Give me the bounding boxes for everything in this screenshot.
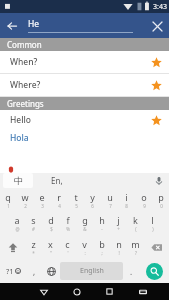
button[interactable]: g: [76, 211, 93, 235]
staticText: 2: [24, 203, 27, 209]
staticText: 5: [75, 203, 78, 209]
staticText: x: [48, 238, 53, 250]
button[interactable]: Shift: [0, 235, 25, 259]
staticText: 1: [7, 203, 10, 209]
staticText: 3: [41, 203, 44, 209]
button[interactable]: Hola: [0, 130, 169, 145]
staticText: Where?: [10, 79, 146, 91]
staticText: +: [117, 226, 120, 232]
staticText: 9: [143, 203, 146, 209]
button[interactable]: Hello: [0, 110, 169, 130]
button[interactable]: Recent apps: [93, 283, 126, 300]
staticText: ;: [101, 250, 103, 256]
staticText: En,: [51, 175, 63, 186]
staticText: !: [118, 250, 120, 256]
staticText: t: [74, 191, 78, 203]
staticText: Common: [7, 39, 42, 50]
staticText: -: [101, 226, 103, 232]
staticText: ): [152, 226, 154, 232]
button[interactable]: c: [59, 235, 76, 259]
button[interactable]: Voice typing: [151, 173, 167, 188]
staticText: q: [5, 191, 11, 203]
button[interactable]: t: [67, 188, 84, 211]
button[interactable]: y: [84, 188, 101, 211]
staticText: d: [48, 214, 54, 226]
button[interactable]: He: [28, 18, 133, 33]
button[interactable]: p: [152, 188, 169, 211]
staticText: z: [31, 238, 36, 250]
staticText: e: [39, 191, 45, 203]
staticText: &: [83, 226, 87, 232]
button[interactable]: Navigate up: [0, 14, 24, 38]
button[interactable]: Clear query: [145, 14, 169, 38]
staticText: Greetings: [7, 98, 44, 109]
button[interactable]: z: [25, 235, 42, 259]
staticText: p: [158, 191, 164, 203]
button[interactable]: i: [118, 188, 135, 211]
staticText: ?: [135, 250, 137, 256]
button[interactable]: When?: [0, 51, 169, 73]
button[interactable]: o: [135, 188, 152, 211]
button[interactable]: r: [50, 188, 67, 211]
staticText: r: [57, 191, 61, 203]
button[interactable]: w: [16, 188, 33, 211]
staticText: .: [130, 266, 133, 277]
staticText: @: [15, 226, 20, 232]
staticText: English: [80, 266, 104, 276]
button[interactable]: Favorite: [146, 110, 166, 130]
button[interactable]: Change language: [42, 259, 60, 283]
staticText: h: [99, 214, 105, 226]
staticText: Hola: [10, 132, 29, 144]
staticText: g: [82, 214, 88, 226]
button[interactable]: h: [93, 211, 110, 235]
button[interactable]: Favorite: [146, 52, 166, 72]
staticText: k: [133, 214, 138, 226]
button[interactable]: Back: [27, 283, 60, 300]
button[interactable]: En,: [43, 173, 71, 188]
button[interactable]: n: [110, 235, 127, 259]
staticText: o: [141, 191, 147, 203]
staticText: He: [28, 18, 40, 30]
button[interactable]: d: [42, 211, 59, 235]
button[interactable]: k: [127, 211, 144, 235]
button[interactable]: ?1: [0, 259, 26, 283]
staticText: u: [107, 191, 113, 203]
staticText: %: [66, 226, 70, 232]
staticText: 3:43: [153, 2, 167, 12]
staticText: 7: [109, 203, 112, 209]
staticText: v: [82, 238, 87, 250]
button[interactable]: Favorite: [146, 75, 166, 95]
staticText: w: [21, 191, 29, 203]
button[interactable]: b: [93, 235, 110, 259]
button[interactable]: Delete: [144, 235, 169, 259]
button[interactable]: l: [144, 211, 161, 235]
button[interactable]: 中: [3, 173, 33, 188]
button[interactable]: s: [25, 211, 42, 235]
staticText: s: [31, 214, 36, 226]
staticText: *: [32, 250, 35, 256]
button[interactable]: m: [127, 235, 144, 259]
button[interactable]: u: [101, 188, 118, 211]
staticText: ,: [33, 266, 36, 277]
button[interactable]: Where?: [0, 74, 169, 96]
button[interactable]: e: [33, 188, 50, 211]
button[interactable]: f: [59, 211, 76, 235]
staticText: n: [116, 238, 122, 250]
staticText: b: [99, 238, 105, 250]
staticText: f: [66, 214, 70, 226]
staticText: :: [84, 250, 86, 256]
staticText: Hello: [10, 114, 146, 126]
button[interactable]: x: [42, 235, 59, 259]
button[interactable]: q: [0, 188, 16, 211]
button[interactable]: v: [76, 235, 93, 259]
button[interactable]: Hide keyboard: [126, 283, 159, 300]
button[interactable]: ,: [26, 259, 42, 283]
staticText: m: [131, 238, 140, 250]
button[interactable]: Search: [146, 263, 163, 280]
button[interactable]: j: [110, 211, 127, 235]
button[interactable]: a: [8, 211, 25, 235]
button[interactable]: Home: [60, 283, 93, 300]
button[interactable]: .: [123, 259, 139, 283]
staticText: 中: [14, 175, 23, 186]
button[interactable]: English: [60, 262, 123, 280]
